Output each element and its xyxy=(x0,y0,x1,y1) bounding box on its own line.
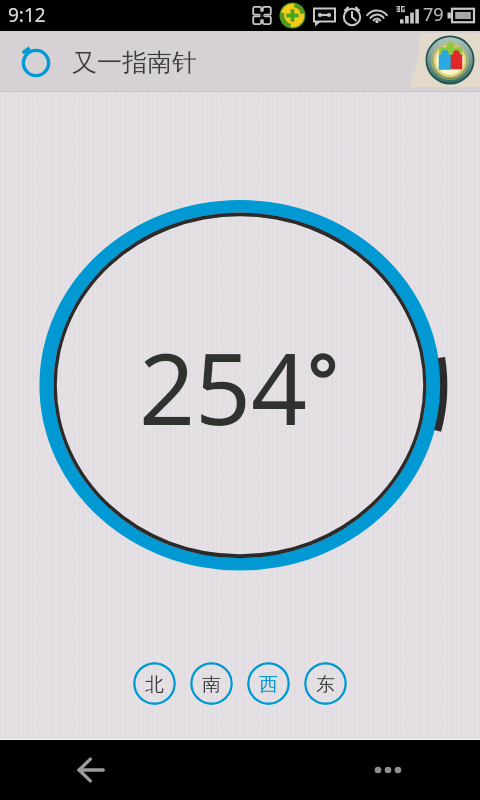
staticText: 79 xyxy=(423,2,444,27)
staticText: 又一指南针 xyxy=(72,47,197,78)
staticText: 南 xyxy=(202,673,221,697)
button[interactable]: Back xyxy=(66,745,116,795)
staticText: 北 xyxy=(145,673,164,697)
staticText: 西 xyxy=(259,673,278,697)
button[interactable]: 南 xyxy=(190,662,233,705)
button[interactable]: 北 xyxy=(133,662,176,705)
staticText: 254 xyxy=(139,320,308,453)
staticText: 9:12 xyxy=(8,2,46,28)
staticText: 东 xyxy=(316,673,335,697)
button[interactable]: Floating assistant xyxy=(410,31,480,91)
button[interactable]: More options xyxy=(363,745,413,795)
button[interactable]: 西 xyxy=(247,662,290,705)
button[interactable]: 东 xyxy=(304,662,347,705)
